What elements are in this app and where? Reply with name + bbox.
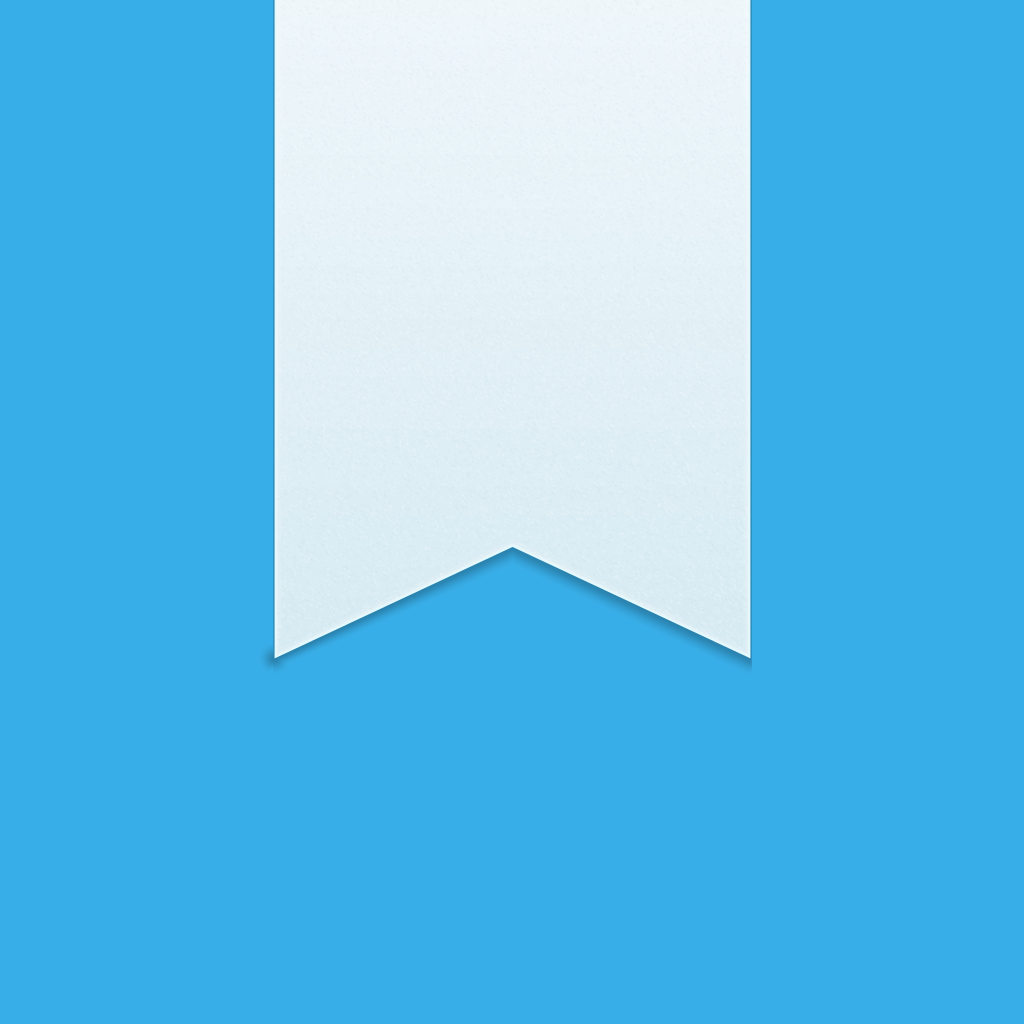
button[interactable]: Bookmark: [0, 0, 1024, 1024]
